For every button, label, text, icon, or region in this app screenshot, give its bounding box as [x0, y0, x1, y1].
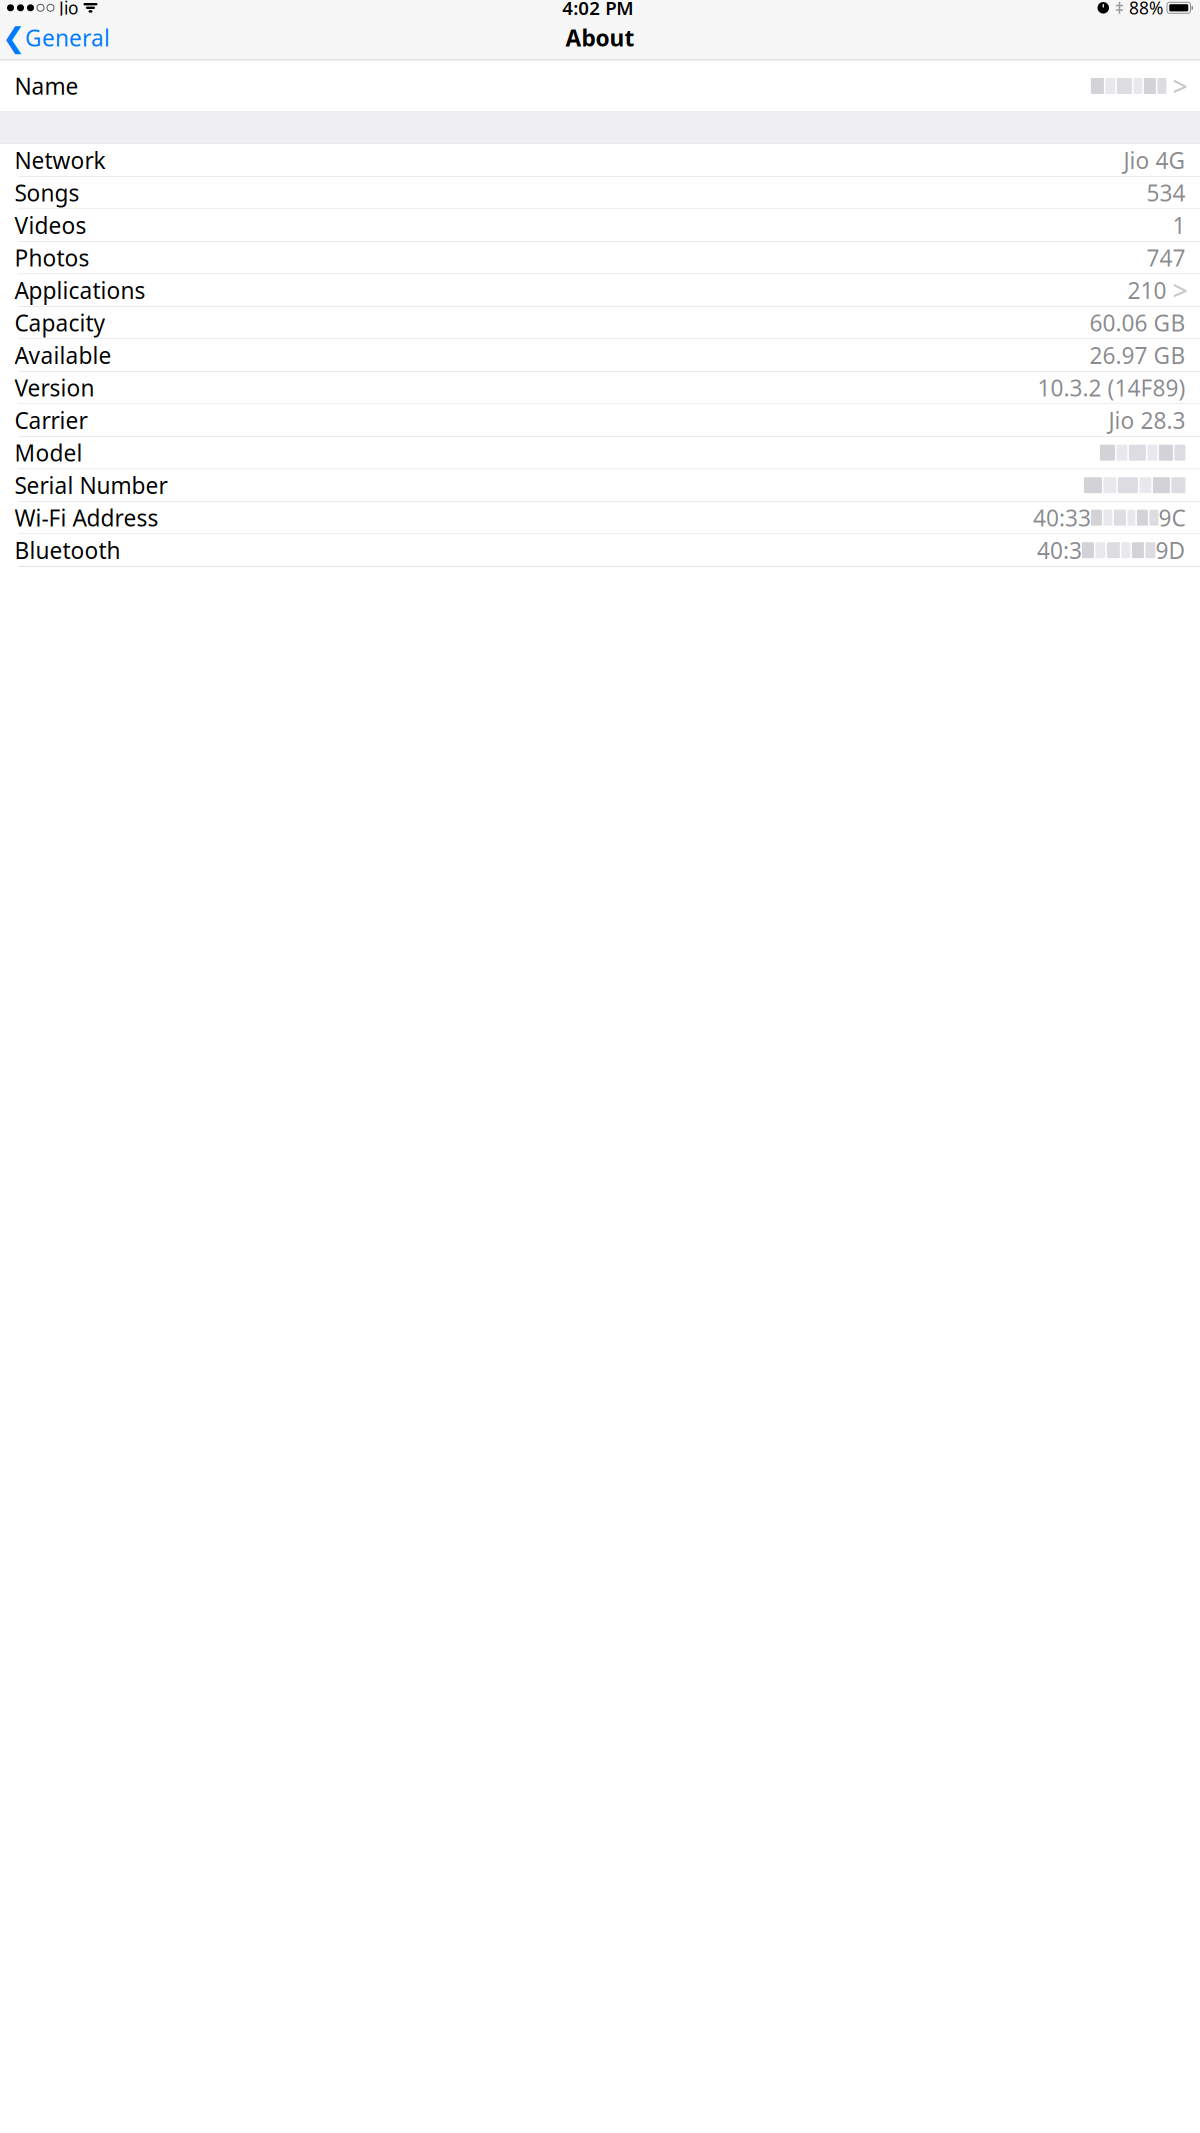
staticText: 88% [1129, 0, 1163, 19]
staticText: Jio 28.3 [1108, 405, 1185, 435]
staticText: 210 [1127, 275, 1166, 305]
button[interactable]: Bluetooth [0, 534, 1200, 566]
staticText: 9C [1158, 503, 1185, 533]
staticText: Jio 4G [1123, 145, 1185, 175]
staticText: 1 [1172, 210, 1185, 240]
staticText: 40:33 [1033, 503, 1091, 533]
button[interactable]: Wi-Fi Address [0, 502, 1200, 534]
button[interactable]: Network [0, 144, 1200, 176]
staticText: Wi-Fi Address [15, 503, 159, 533]
staticText: 747 [1146, 243, 1185, 273]
staticText: 9D [1155, 535, 1185, 565]
staticText: Videos [15, 210, 87, 240]
staticText: Available [15, 340, 112, 370]
staticText: Jio [59, 0, 78, 19]
button[interactable]: Songs [0, 177, 1200, 209]
staticText: > [1172, 272, 1187, 308]
button[interactable]: ❮ [0, 16, 120, 59]
staticText: Name [15, 71, 79, 101]
staticText: Bluetooth [15, 535, 121, 565]
button[interactable]: Photos [0, 242, 1200, 274]
staticText: Version [15, 373, 95, 403]
staticText: Serial Number [15, 470, 168, 500]
staticText: Capacity [15, 308, 106, 338]
button[interactable]: Carrier [0, 404, 1200, 436]
staticText: Applications [15, 275, 146, 305]
staticText: Songs [15, 178, 80, 208]
button[interactable]: Name [0, 70, 1200, 102]
staticText: ❮ [2, 22, 25, 53]
staticText: 26.97 GB [1089, 340, 1185, 370]
button[interactable]: Applications [0, 274, 1200, 306]
staticText: 10.3.2 (14F89) [1037, 373, 1185, 403]
staticText: 60.06 GB [1089, 308, 1185, 338]
staticText: 534 [1146, 178, 1185, 208]
staticText: Photos [15, 243, 90, 273]
staticText: Network [15, 145, 106, 175]
button[interactable]: Capacity [0, 307, 1200, 339]
staticText: 4:02 PM [562, 0, 633, 20]
staticText: Carrier [15, 405, 88, 435]
button[interactable]: Videos [0, 209, 1200, 241]
button[interactable]: Available [0, 339, 1200, 371]
button[interactable]: Model [0, 437, 1200, 469]
button[interactable]: Serial Number [0, 469, 1200, 501]
staticText: > [1172, 68, 1187, 104]
staticText: About [565, 22, 634, 53]
staticText: General [25, 22, 110, 53]
button[interactable]: Version [0, 372, 1200, 404]
staticText: 40:3 [1037, 535, 1082, 565]
staticText: Model [15, 438, 83, 468]
